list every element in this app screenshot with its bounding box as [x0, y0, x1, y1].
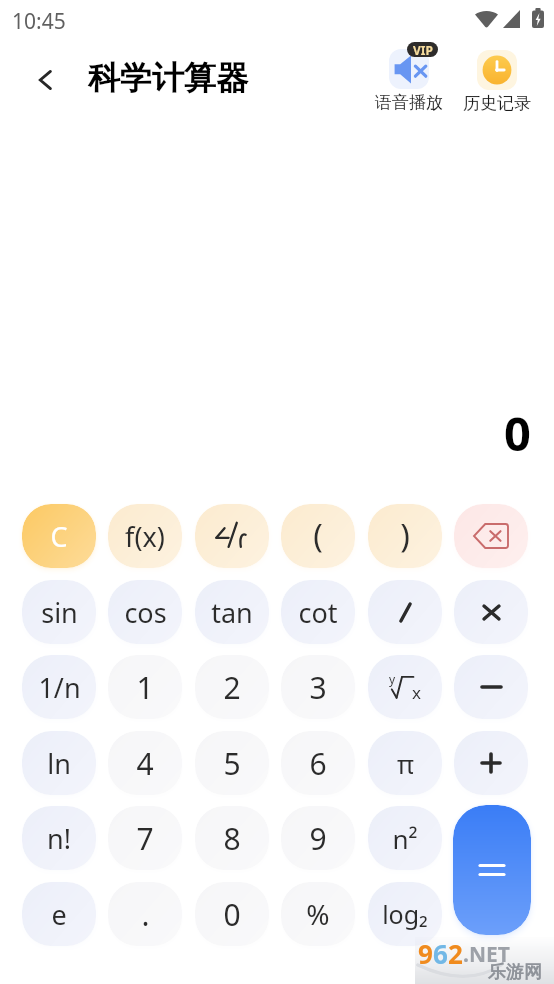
button[interactable]: tan — [195, 580, 269, 644]
staticText: 0 — [223, 894, 241, 935]
staticText: x — [412, 681, 421, 704]
staticText: 2 — [448, 936, 463, 971]
staticText: 9 — [418, 936, 433, 971]
button[interactable]: Back — [24, 58, 68, 102]
staticText: cos — [124, 594, 167, 631]
staticText: 7 — [136, 818, 154, 859]
staticText: 1/n — [38, 669, 81, 706]
button[interactable]: % — [281, 882, 355, 946]
staticText: ( — [313, 514, 323, 558]
staticText: . — [141, 894, 150, 935]
staticText: 乐游网 — [488, 961, 542, 984]
button[interactable]: f(x) — [108, 504, 182, 568]
staticText: n² — [392, 821, 418, 856]
staticText: 6 — [309, 743, 327, 784]
staticText: 6 — [433, 936, 448, 971]
button[interactable]: 2 — [195, 655, 269, 719]
button[interactable]: 3 — [281, 655, 355, 719]
staticText: VIP — [413, 42, 433, 57]
button[interactable]: e — [22, 882, 96, 946]
staticText: 4 — [136, 743, 154, 784]
button[interactable]: log₂ — [368, 882, 442, 946]
button[interactable]: π — [368, 731, 442, 795]
staticText: 0 — [0, 401, 531, 465]
staticText: 9 — [309, 818, 327, 859]
button[interactable]: 6 — [281, 731, 355, 795]
staticText: 5 — [223, 743, 241, 784]
button[interactable]: Multiply — [454, 580, 528, 644]
button[interactable]: cot — [281, 580, 355, 644]
staticText: cot — [298, 594, 338, 631]
staticText: 3 — [309, 667, 327, 708]
button[interactable]: . — [108, 882, 182, 946]
button[interactable]: ( — [281, 504, 355, 568]
staticText: tan — [211, 594, 253, 631]
button[interactable]: C — [22, 504, 96, 568]
button[interactable]: Equals — [453, 805, 531, 935]
staticText: 语音播放 — [375, 92, 443, 113]
staticText: .NET — [463, 940, 510, 969]
button[interactable]: 8 — [195, 806, 269, 870]
button[interactable]: n² — [368, 806, 442, 870]
staticText: 历史记录 — [463, 93, 531, 114]
button[interactable]: Divide — [368, 580, 442, 644]
button[interactable]: 语音播放 — [369, 49, 449, 113]
button[interactable]: 7 — [108, 806, 182, 870]
button[interactable]: 4 — [108, 731, 182, 795]
button[interactable]: ln — [22, 731, 96, 795]
staticText: f(x) — [125, 518, 165, 555]
button[interactable]: 历史记录 — [457, 50, 537, 114]
button[interactable]: cos — [108, 580, 182, 644]
button[interactable]: ) — [368, 504, 442, 568]
staticText: π — [397, 746, 414, 781]
staticText: 1 — [136, 667, 154, 708]
button[interactable]: 0 — [195, 882, 269, 946]
button[interactable]: 1 — [108, 655, 182, 719]
staticText: 科学计算器 — [88, 58, 248, 98]
staticText: % — [306, 895, 330, 933]
staticText: 10:45 — [12, 7, 66, 36]
button[interactable]: 1/n — [22, 655, 96, 719]
button[interactable]: Angle unit — [195, 504, 269, 568]
staticText: ln — [47, 745, 71, 782]
staticText: ) — [400, 514, 410, 558]
staticText: e — [51, 896, 67, 933]
button[interactable]: n! — [22, 806, 96, 870]
staticText: sin — [41, 594, 78, 631]
staticText: log₂ — [382, 897, 428, 931]
button[interactable]: Backspace — [454, 504, 528, 568]
button[interactable]: 5 — [195, 731, 269, 795]
staticText: C — [50, 518, 68, 555]
staticText: 8 — [223, 818, 241, 859]
staticText: n! — [47, 820, 71, 857]
button[interactable]: 9 — [281, 806, 355, 870]
staticText: y — [389, 671, 396, 687]
button[interactable]: Plus — [454, 731, 528, 795]
button[interactable]: Minus — [454, 655, 528, 719]
button[interactable]: Nth root — [368, 655, 442, 719]
button[interactable]: sin — [22, 580, 96, 644]
staticText: 2 — [223, 667, 241, 708]
